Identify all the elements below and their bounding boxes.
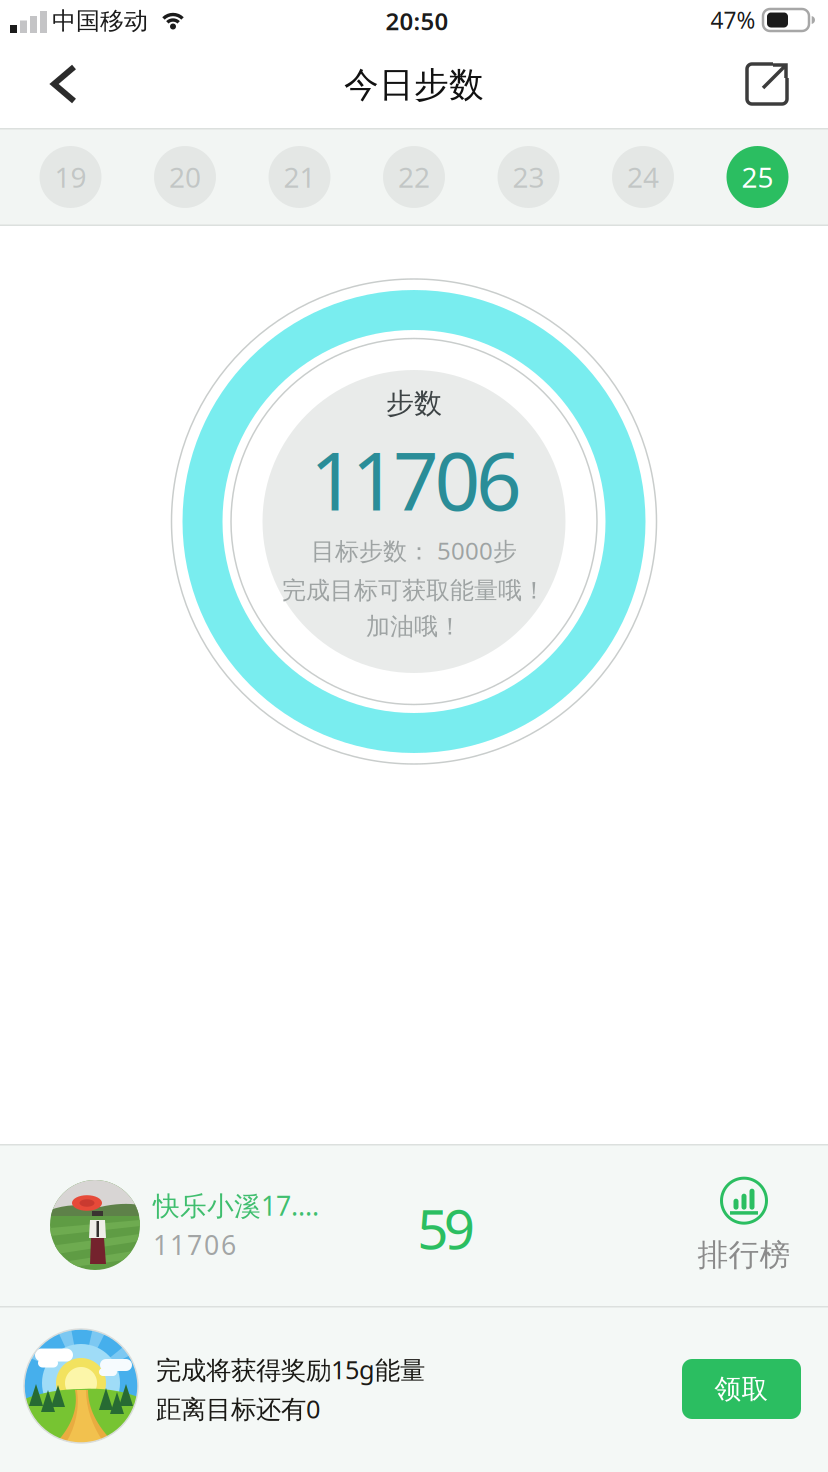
staticText: 24	[627, 158, 659, 196]
staticText: 完成目标可获取能量哦！	[282, 576, 546, 605]
staticText: 19	[54, 158, 86, 196]
staticText: 21	[283, 158, 315, 196]
button[interactable]: 23	[497, 146, 559, 208]
staticText: 目标步数： 5000步	[311, 535, 517, 566]
button[interactable]: 19	[39, 146, 101, 208]
staticText: 59	[417, 1192, 475, 1264]
staticText: 11706	[310, 426, 522, 533]
staticText: 快乐小溪17....	[153, 1188, 319, 1223]
button[interactable]: 22	[383, 146, 445, 208]
staticText: 排行榜	[697, 1236, 790, 1274]
staticText: 今日步数	[344, 64, 484, 106]
button[interactable]: 25	[726, 146, 788, 208]
staticText: 25	[741, 158, 773, 196]
button[interactable]: 20	[154, 146, 216, 208]
staticText: 领取	[714, 1373, 768, 1405]
button[interactable]: 领取	[682, 1359, 801, 1419]
staticText: 11706	[153, 1227, 236, 1262]
staticText: 完成将获得奖励15g能量	[156, 1353, 425, 1386]
button[interactable]: Share	[731, 48, 803, 120]
staticText: 步数	[386, 386, 442, 421]
staticText: 23	[512, 158, 544, 196]
button[interactable]: 24	[612, 146, 674, 208]
button[interactable]: 21	[268, 146, 330, 208]
staticText: 中国移动	[52, 6, 148, 36]
button[interactable]: Back	[32, 47, 96, 121]
staticText: 20	[169, 158, 201, 196]
button[interactable]: 排行榜	[691, 1172, 796, 1280]
staticText: 20:50	[385, 5, 448, 37]
staticText: 22	[398, 158, 430, 196]
staticText: 47%	[710, 5, 755, 35]
staticText: 距离目标还有0	[156, 1392, 320, 1425]
staticText: 加油哦！	[366, 612, 462, 641]
